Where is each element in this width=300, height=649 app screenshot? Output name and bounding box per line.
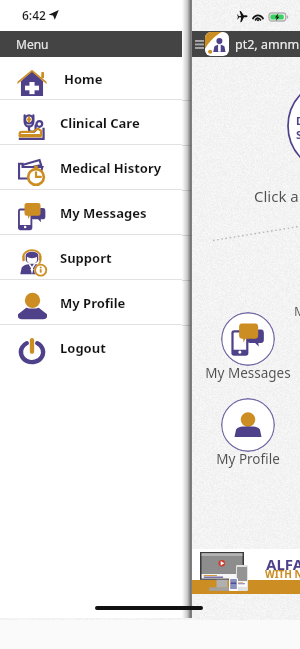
staticText: 6:42 xyxy=(22,7,46,23)
staticText: Click ab xyxy=(254,186,300,206)
button[interactable]: Clinical Care xyxy=(0,100,188,145)
button[interactable]: My Messages xyxy=(0,190,188,235)
staticText: My Messages xyxy=(60,204,147,222)
staticText: Medical History xyxy=(60,159,162,177)
staticText: Menu xyxy=(16,36,49,52)
button[interactable]: Home xyxy=(0,57,188,100)
staticText: My Profile xyxy=(216,450,280,468)
staticText: Support xyxy=(60,249,112,267)
button[interactable]: Support xyxy=(0,235,188,280)
staticText: My Profile xyxy=(60,294,126,312)
staticText: My Messages xyxy=(205,364,291,382)
button[interactable]: ALFA xyxy=(191,549,300,594)
button[interactable]: Logout xyxy=(0,325,188,370)
staticText: Logout xyxy=(60,339,106,357)
button[interactable]: My Profile xyxy=(0,280,188,325)
button[interactable]: My Messages xyxy=(196,312,300,384)
button[interactable]: Medical History xyxy=(0,145,188,190)
staticText: SU xyxy=(296,127,300,142)
staticText: WITH NO xyxy=(265,567,300,581)
button[interactable]: My Profile xyxy=(196,398,300,470)
staticText: pt2, amnm xyxy=(235,36,300,53)
staticText: Clinical Care xyxy=(60,114,140,132)
staticText: Home xyxy=(64,70,103,88)
button[interactable]: Open navigation menu xyxy=(0,31,300,57)
button[interactable]: Open navigation menu xyxy=(194,31,204,57)
staticText: ALFA xyxy=(266,554,300,574)
staticText: M xyxy=(294,302,300,320)
staticText: DE xyxy=(296,113,300,128)
